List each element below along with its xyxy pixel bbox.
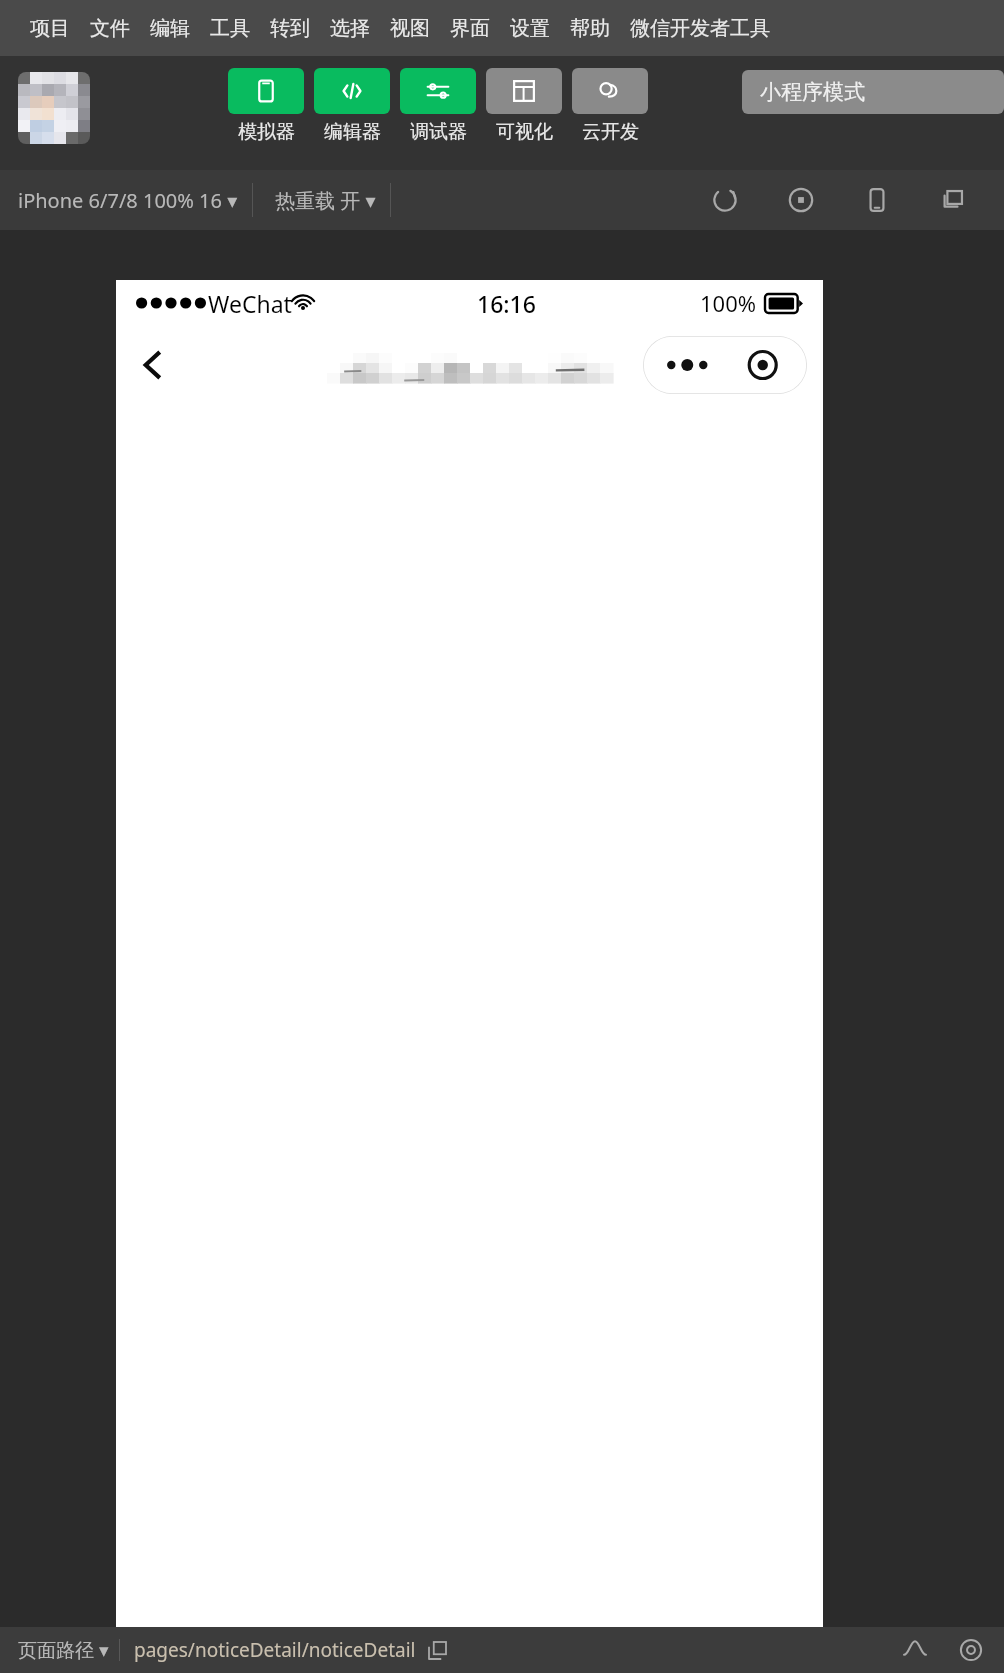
button[interactable]: 调试器 <box>400 68 476 144</box>
button[interactable]: Preview on device <box>856 179 898 221</box>
staticText: 可视化 <box>496 120 553 144</box>
staticText: 帮助 <box>570 16 610 41</box>
button[interactable]: 帮助 <box>562 12 618 45</box>
staticText: 转到 <box>270 16 310 41</box>
staticText: 热重载 开 ▾ <box>275 187 376 214</box>
button[interactable]: Refresh <box>704 179 746 221</box>
staticText: 项目 <box>30 16 70 41</box>
button[interactable]: Help <box>954 1633 988 1667</box>
button[interactable]: 界面 <box>442 12 498 45</box>
button[interactable]: 编辑 <box>142 12 198 45</box>
staticText: 工具 <box>210 16 250 41</box>
staticText: 界面 <box>450 16 490 41</box>
button[interactable]: 转到 <box>262 12 318 45</box>
button[interactable]: Account avatar <box>18 72 90 144</box>
button[interactable]: iPhone 6/7/8 100% 16 ▾ <box>0 181 252 220</box>
button[interactable]: 模拟器 <box>228 68 304 144</box>
staticText: 选择 <box>330 16 370 41</box>
button[interactable]: 页面路径 ▾ <box>0 1637 119 1663</box>
button[interactable]: 可视化 <box>486 68 562 144</box>
button[interactable]: 选择 <box>322 12 378 45</box>
button[interactable]: 编辑器 <box>314 68 390 144</box>
button[interactable]: 热重载 开 ▾ <box>253 181 390 220</box>
staticText: iPhone 6/7/8 100% 16 ▾ <box>18 187 238 214</box>
staticText: 页面路径 ▾ <box>18 1637 109 1663</box>
staticText: 小程序模式 <box>760 79 865 105</box>
staticText: 云开发 <box>582 120 639 144</box>
button[interactable]: Performance <box>898 1633 932 1667</box>
staticText: pages/noticeDetail/noticeDetail <box>134 1637 416 1663</box>
button[interactable]: Copy path <box>424 1637 450 1663</box>
staticText: 视图 <box>390 16 430 41</box>
staticText: 文件 <box>90 16 130 41</box>
staticText: 调试器 <box>410 120 467 144</box>
button[interactable]: 工具 <box>202 12 258 45</box>
button[interactable]: Menu and close <box>643 336 807 394</box>
button[interactable]: Detach window <box>932 179 974 221</box>
button[interactable]: 视图 <box>382 12 438 45</box>
button[interactable]: Back <box>130 342 176 388</box>
button[interactable]: pages/noticeDetail/noticeDetail <box>120 1637 424 1663</box>
staticText: WeChat <box>208 288 292 319</box>
button[interactable]: 微信开发者工具 <box>622 12 778 45</box>
button[interactable]: 项目 <box>22 12 78 45</box>
button[interactable]: 云开发 <box>572 68 648 144</box>
button[interactable]: 小程序模式 <box>742 70 1004 114</box>
button[interactable]: 文件 <box>82 12 138 45</box>
staticText: 100% <box>700 288 757 318</box>
button[interactable]: 设置 <box>502 12 558 45</box>
staticText: 微信开发者工具 <box>630 16 770 41</box>
staticText: 16:16 <box>477 288 536 319</box>
staticText: 编辑 <box>150 16 190 41</box>
staticText: 编辑器 <box>324 120 381 144</box>
button[interactable]: Stop <box>780 179 822 221</box>
staticText: 模拟器 <box>238 120 295 144</box>
staticText: 设置 <box>510 16 550 41</box>
